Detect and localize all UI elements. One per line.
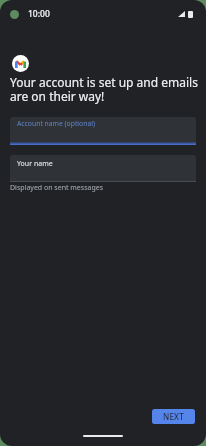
staticText: Displayed on sent messages	[10, 183, 104, 193]
staticText: Your name	[17, 159, 53, 169]
staticText: Your account is set up and emails are on…	[10, 74, 198, 105]
button[interactable]: Your name	[10, 155, 196, 182]
button[interactable]: NEXT	[152, 409, 195, 424]
staticText: 10:00	[28, 8, 50, 20]
staticText: NEXT	[163, 411, 184, 422]
button[interactable]: Account name (optional)	[10, 117, 196, 145]
staticText: Account name (optional)	[17, 119, 96, 128]
